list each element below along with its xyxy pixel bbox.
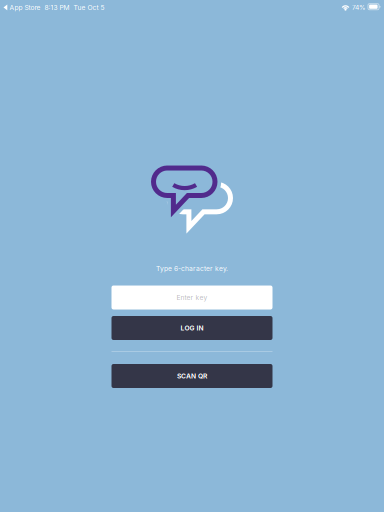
button[interactable]: LOG IN (111, 316, 272, 340)
button[interactable]: SCAN QR (111, 364, 272, 388)
staticText: Type 6-character key. (156, 264, 228, 273)
staticText: 8:13 PM (40, 3, 69, 12)
staticText: Enter key (176, 293, 207, 302)
button[interactable]: Enter key (111, 285, 272, 309)
staticText: Tue Oct 5 (69, 3, 104, 12)
staticText: LOG IN (180, 324, 203, 332)
staticText: App Store (7, 3, 40, 12)
staticText: SCAN QR (177, 372, 207, 380)
staticText: 74% (350, 3, 368, 11)
